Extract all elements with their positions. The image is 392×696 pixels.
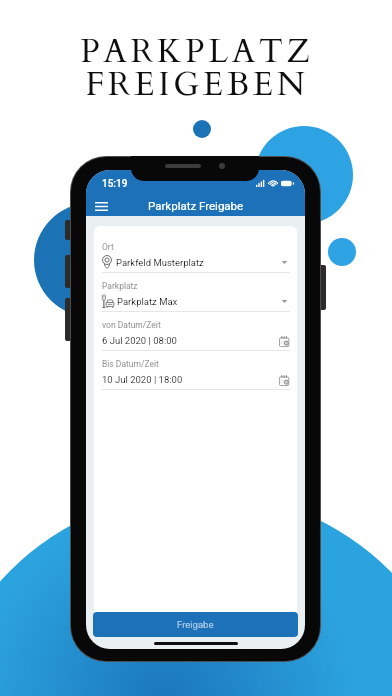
button[interactable]: von Datum/Zeit [102, 320, 290, 359]
button[interactable]: Open navigation menu [91, 196, 111, 216]
staticText: Parkfeld Musterplatz [116, 257, 279, 268]
staticText: von Datum/Zeit [102, 320, 161, 330]
staticText: Freigabe [177, 619, 214, 630]
staticText: Parkplatz [102, 281, 138, 291]
staticText: PARKPLATZ [80, 29, 314, 74]
button[interactable]: Parkplatz [102, 281, 290, 320]
staticText: 15:19 [102, 178, 128, 190]
staticText: Parkplatz Freigabe [148, 199, 244, 212]
staticText: FREIGEBEN [85, 62, 309, 107]
staticText: Ort [102, 242, 114, 252]
staticText: Parkplatz Max [117, 296, 279, 307]
button[interactable]: Freigabe [93, 612, 298, 637]
button[interactable]: Ort [102, 242, 290, 281]
staticText: 10 Jul 2020 | 18:00 [102, 374, 279, 385]
staticText: 6 Jul 2020 | 08:00 [102, 335, 279, 346]
button[interactable]: Bis Datum/Zeit [102, 359, 290, 398]
staticText: Bis Datum/Zeit [102, 359, 159, 369]
